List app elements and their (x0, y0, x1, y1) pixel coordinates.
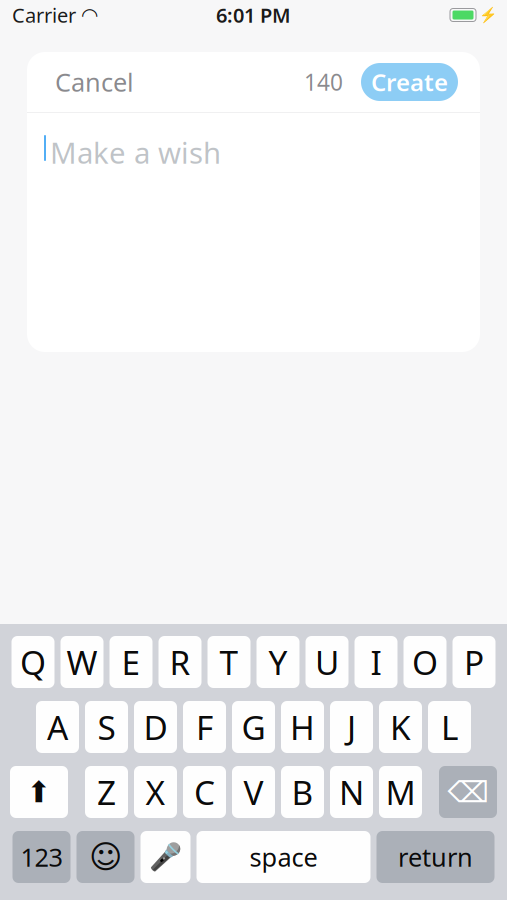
button[interactable]: Create (361, 63, 458, 101)
staticText: T (219, 640, 238, 684)
staticText: D (143, 705, 167, 749)
staticText: ⌫ (447, 775, 488, 809)
staticText: K (390, 705, 411, 749)
staticText: R (169, 640, 190, 684)
staticText: W (66, 640, 97, 684)
staticText: V (243, 770, 263, 814)
staticText: F (196, 705, 213, 749)
staticText: ◠ (82, 4, 97, 26)
button[interactable]: N (330, 766, 373, 818)
button[interactable]: O (403, 636, 446, 688)
button[interactable]: C (183, 766, 226, 818)
button[interactable]: Return (376, 831, 494, 883)
staticText: N (339, 770, 364, 814)
staticText: O (412, 640, 438, 684)
staticText: L (441, 705, 458, 749)
staticText: ⬆ (26, 775, 51, 809)
button[interactable]: E (109, 636, 152, 688)
staticText: J (347, 705, 356, 749)
button[interactable]: Space (196, 831, 370, 883)
staticText: Make a wish (50, 133, 221, 172)
staticText: ☺ (89, 839, 122, 875)
staticText: B (291, 770, 313, 814)
button[interactable]: Z (85, 766, 128, 818)
staticText: E (121, 640, 140, 684)
staticText: Y (268, 640, 287, 684)
button[interactable]: Dictation (140, 831, 190, 883)
button[interactable]: L (428, 701, 471, 753)
button[interactable]: Numbers (12, 831, 70, 883)
staticText: C (194, 770, 215, 814)
button[interactable]: Y (256, 636, 299, 688)
button[interactable]: R (158, 636, 201, 688)
staticText: A (47, 705, 68, 749)
button[interactable]: G (232, 701, 275, 753)
button[interactable]: Delete (439, 766, 497, 818)
button[interactable]: B (281, 766, 324, 818)
staticText: Create (371, 66, 448, 98)
button[interactable]: Cancel (51, 55, 138, 109)
button[interactable]: S (85, 701, 128, 753)
staticText: X (145, 770, 165, 814)
staticText: return (398, 840, 473, 874)
button[interactable]: Q (11, 636, 54, 688)
staticText: Cancel (55, 65, 134, 99)
staticText: 123 (20, 840, 62, 874)
button[interactable]: J (330, 701, 373, 753)
staticText: 140 (304, 67, 343, 97)
staticText: G (241, 705, 265, 749)
staticText: M (385, 770, 415, 814)
button[interactable]: H (281, 701, 324, 753)
button[interactable]: K (379, 701, 422, 753)
staticText: 6:01 PM (216, 2, 291, 28)
button[interactable]: Shift (10, 766, 68, 818)
button[interactable]: M (379, 766, 422, 818)
staticText: Q (20, 640, 46, 684)
staticText: U (315, 640, 339, 684)
staticText: I (370, 640, 381, 684)
staticText: H (290, 705, 315, 749)
button[interactable]: W (60, 636, 103, 688)
button[interactable]: U (305, 636, 348, 688)
button[interactable]: T (207, 636, 250, 688)
button[interactable]: F (183, 701, 226, 753)
staticText: Carrier (12, 2, 76, 28)
button[interactable]: I (354, 636, 397, 688)
staticText: P (464, 640, 484, 684)
staticText: 🎤 (149, 842, 182, 872)
button[interactable]: A (36, 701, 79, 753)
button[interactable]: D (134, 701, 177, 753)
staticText: space (249, 840, 317, 874)
staticText: S (97, 705, 115, 749)
button[interactable]: X (134, 766, 177, 818)
button[interactable]: P (452, 636, 495, 688)
staticText: ⚡ (479, 7, 497, 23)
button[interactable]: V (232, 766, 275, 818)
button[interactable]: Emoji (76, 831, 134, 883)
staticText: Z (97, 770, 116, 814)
